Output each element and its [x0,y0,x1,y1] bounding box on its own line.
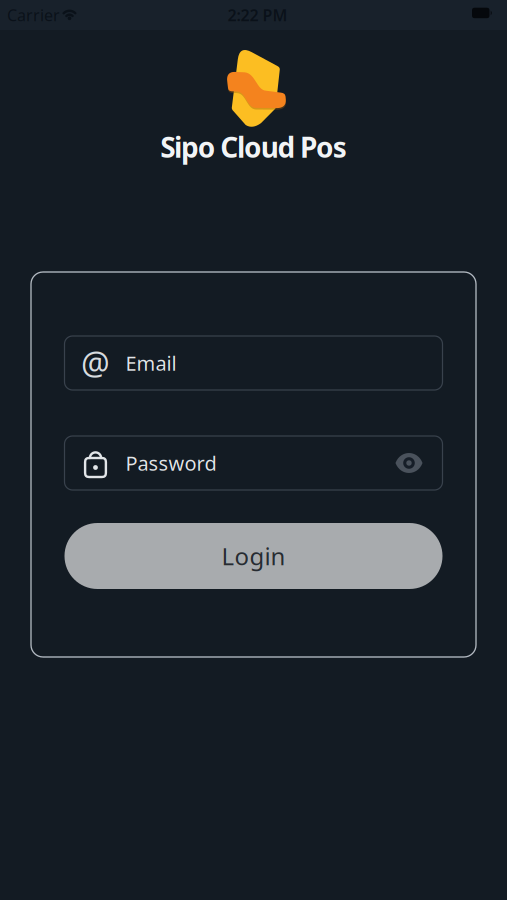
staticText: 2:22 PM [227,4,287,26]
button[interactable]: Password [64,436,442,490]
staticText: Password [125,450,216,476]
staticText: Sipo Cloud Pos [160,128,347,166]
button[interactable]: Show password [395,453,422,473]
button[interactable]: Login [64,523,442,589]
staticText: Login [221,540,285,572]
staticText: Email [125,350,176,376]
button[interactable]: @ [64,336,442,390]
staticText: Carrier [7,4,60,26]
staticText: @ [81,342,110,384]
